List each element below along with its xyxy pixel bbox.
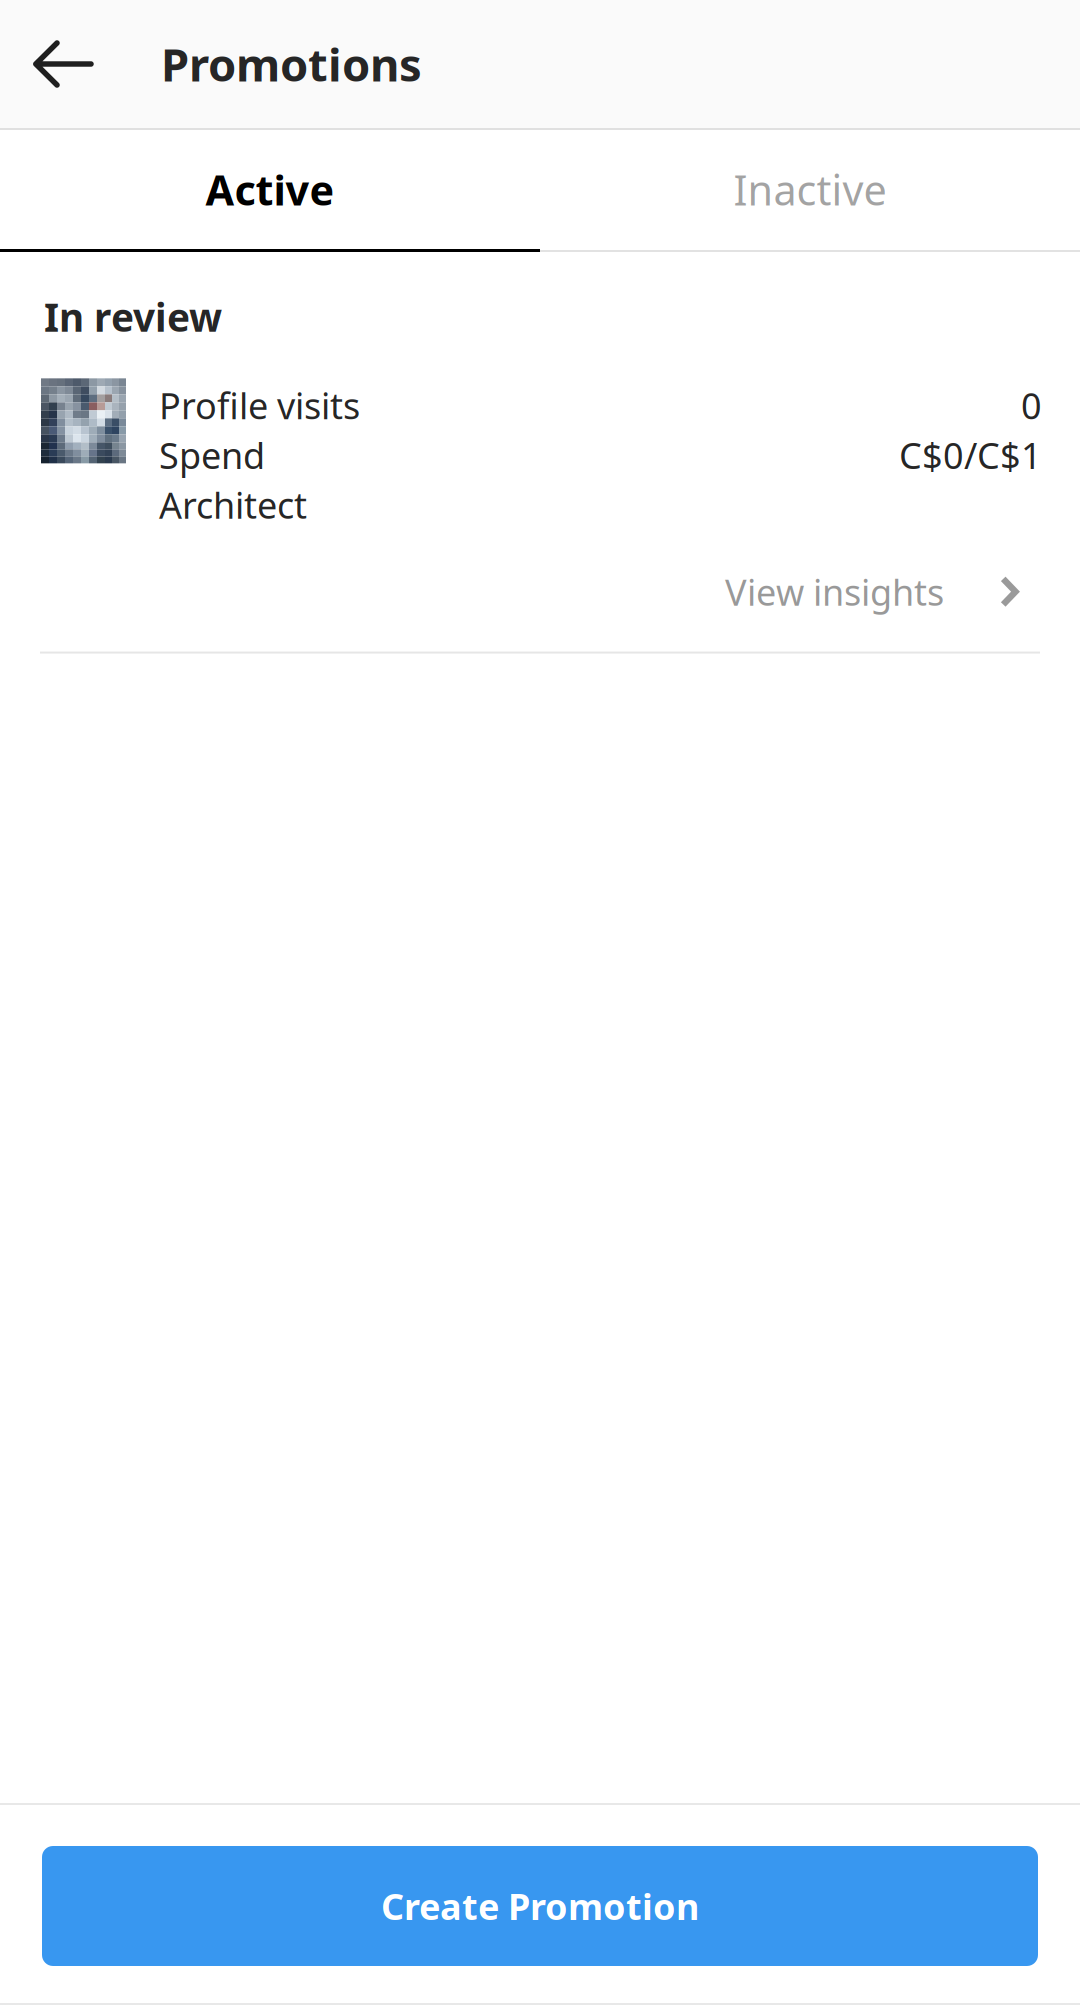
staticText: C$0/C$1	[899, 431, 1042, 479]
staticText: Active	[205, 162, 334, 217]
staticText: Inactive	[733, 162, 886, 217]
button[interactable]: View insights	[0, 529, 1080, 616]
staticText: 0	[1021, 381, 1042, 429]
button[interactable]: Back	[0, 0, 161, 128]
button[interactable]: Active	[0, 130, 540, 252]
staticText: View insights	[725, 568, 944, 616]
button[interactable]: Create Promotion	[0, 1805, 1080, 2003]
staticText: Promotions	[161, 34, 422, 94]
button[interactable]: Profile visits	[0, 342, 1080, 653]
staticText: Spend	[159, 431, 265, 479]
staticText: Profile visits	[159, 381, 360, 429]
staticText: In review	[44, 291, 222, 342]
staticText: Architect	[159, 481, 307, 529]
staticText: Create Promotion	[381, 1882, 699, 1930]
button[interactable]: Inactive	[540, 130, 1080, 252]
